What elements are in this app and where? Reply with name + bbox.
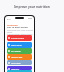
- staticText: Top 10 most asked questions: [7, 26, 33, 29]
- staticText: 9:41: [7, 18, 11, 21]
- button[interactable]: Minerals: [7, 70, 32, 72]
- staticText: Eat greens: [11, 50, 21, 53]
- button[interactable]: More fibre: [7, 60, 32, 65]
- staticText: Everything you need to know about buildi…: [7, 29, 33, 37]
- staticText: Improve your nutrition: [0, 5, 64, 9]
- button[interactable]: Vitamins: [7, 66, 32, 70]
- button[interactable]: Eat greens: [7, 48, 32, 54]
- button[interactable]: Healthy fats: [7, 54, 32, 60]
- staticText: Protein intake: [11, 37, 25, 40]
- staticText: Vitamins: [11, 68, 20, 70]
- staticText: Healthy fats: [11, 56, 23, 59]
- staticText: More fibre: [11, 62, 21, 65]
- staticText: Drink water: [11, 44, 22, 47]
- button[interactable]: Drink water: [7, 42, 32, 48]
- button[interactable]: Protein intake: [7, 35, 32, 41]
- staticText: NUTRITION: [7, 24, 18, 27]
